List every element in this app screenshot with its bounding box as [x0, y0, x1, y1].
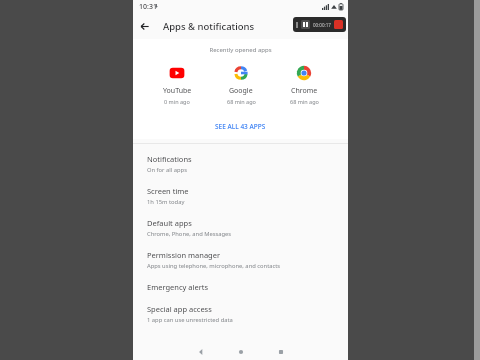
button[interactable]: YouTube	[147, 64, 207, 106]
button[interactable]: Emergency alerts	[133, 276, 348, 298]
staticText: Chrome	[291, 86, 318, 96]
staticText: Recently opened apps	[133, 46, 348, 54]
button[interactable]: Default apps	[133, 212, 348, 244]
button[interactable]: Screen time	[133, 180, 348, 212]
button[interactable]: Screen recorder controls	[293, 17, 346, 32]
staticText: 10:31	[139, 2, 157, 12]
button[interactable]: Google	[211, 64, 271, 106]
staticText: Default apps	[147, 218, 192, 228]
staticText: Notifications	[147, 154, 192, 164]
staticText: 0 min ago	[164, 98, 190, 105]
button[interactable]: Permission manager	[133, 244, 348, 276]
staticText: YouTube	[163, 86, 192, 96]
staticText: Apps using telephone, microphone, and co…	[147, 262, 281, 270]
button[interactable]: Stop recording	[334, 20, 343, 29]
staticText: 68 min ago	[227, 98, 256, 105]
staticText: Apps & notifications	[163, 20, 255, 33]
staticText: Special app access	[147, 304, 212, 314]
button[interactable]: Home	[221, 344, 261, 360]
staticText: 00:00:17	[313, 22, 331, 28]
button[interactable]: Recent apps	[261, 344, 301, 360]
button[interactable]: Back	[181, 344, 221, 360]
button[interactable]: Search	[324, 15, 346, 37]
staticText: 68 min ago	[290, 98, 319, 105]
button[interactable]: Back	[133, 15, 155, 37]
staticText: On for all apps	[147, 166, 187, 174]
staticText: Emergency alerts	[147, 282, 209, 292]
staticText: 1 app can use unrestricted data	[147, 316, 233, 324]
staticText: SEE ALL 43 APPS	[215, 122, 266, 131]
staticText: Google	[229, 86, 253, 96]
button[interactable]: Notifications	[133, 148, 348, 180]
staticText: 1h 15m today	[147, 198, 185, 206]
button[interactable]: Chrome	[274, 64, 334, 106]
button[interactable]: SEE ALL 43 APPS	[133, 118, 348, 135]
staticText: Permission manager	[147, 250, 221, 260]
staticText: Chrome, Phone, and Messages	[147, 230, 232, 238]
button[interactable]: Special app access	[133, 298, 348, 330]
staticText: Screen time	[147, 186, 189, 196]
